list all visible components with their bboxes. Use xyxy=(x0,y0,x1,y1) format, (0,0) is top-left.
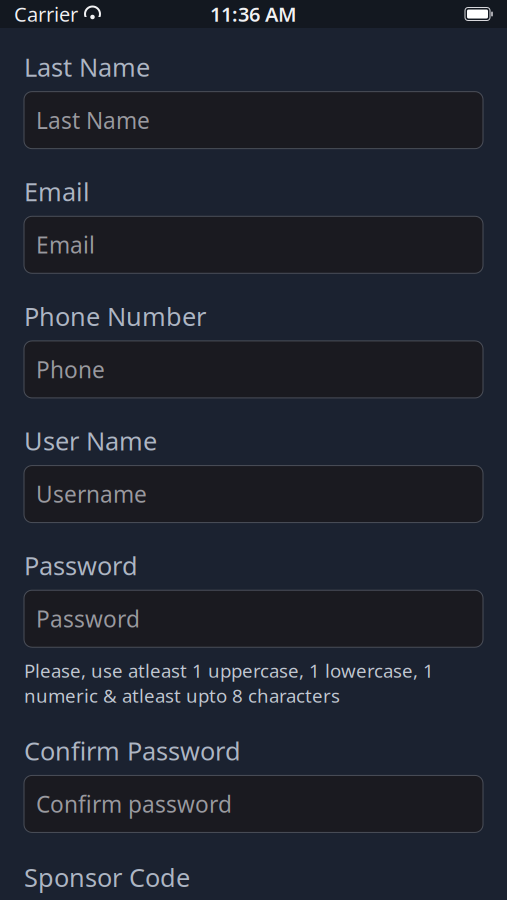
staticText: Email xyxy=(36,230,95,260)
staticText: Password xyxy=(36,604,140,634)
staticText: Last Name xyxy=(36,105,150,135)
button[interactable]: Password xyxy=(24,590,483,647)
staticText: Sponsor Code xyxy=(24,860,190,894)
staticText: Password xyxy=(24,549,138,582)
staticText: Carrier xyxy=(14,1,78,27)
staticText: Email xyxy=(24,175,90,208)
button[interactable]: Phone xyxy=(24,341,483,398)
staticText: Username xyxy=(36,479,147,509)
staticText: Last Name xyxy=(24,50,150,84)
staticText: User Name xyxy=(24,424,157,457)
button[interactable]: Last Name xyxy=(24,92,483,149)
staticText: Confirm password xyxy=(36,789,232,819)
staticText: Phone xyxy=(36,354,105,384)
button[interactable]: Username xyxy=(24,466,483,523)
button[interactable]: Confirm password xyxy=(24,775,483,832)
staticText: Please, use atleast 1 uppercase, 1 lower… xyxy=(24,658,434,708)
button[interactable]: Email xyxy=(24,216,483,273)
staticText: Phone Number xyxy=(24,299,206,333)
staticText: Confirm Password xyxy=(24,734,241,767)
staticText: 11:36 AM xyxy=(210,1,297,27)
